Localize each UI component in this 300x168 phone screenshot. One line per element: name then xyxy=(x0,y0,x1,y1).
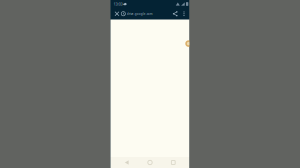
staticText: 13:03 xyxy=(113,1,122,7)
button[interactable]: Back xyxy=(120,157,134,167)
button[interactable]: Page info — drive.google.com xyxy=(121,8,153,19)
button[interactable]: Close xyxy=(113,8,121,19)
button[interactable]: Recent apps xyxy=(166,157,180,167)
button[interactable]: More options xyxy=(180,8,188,19)
button[interactable]: Home xyxy=(143,157,157,167)
button[interactable]: Share xyxy=(170,8,180,19)
staticText: drive.google.com xyxy=(127,12,153,16)
